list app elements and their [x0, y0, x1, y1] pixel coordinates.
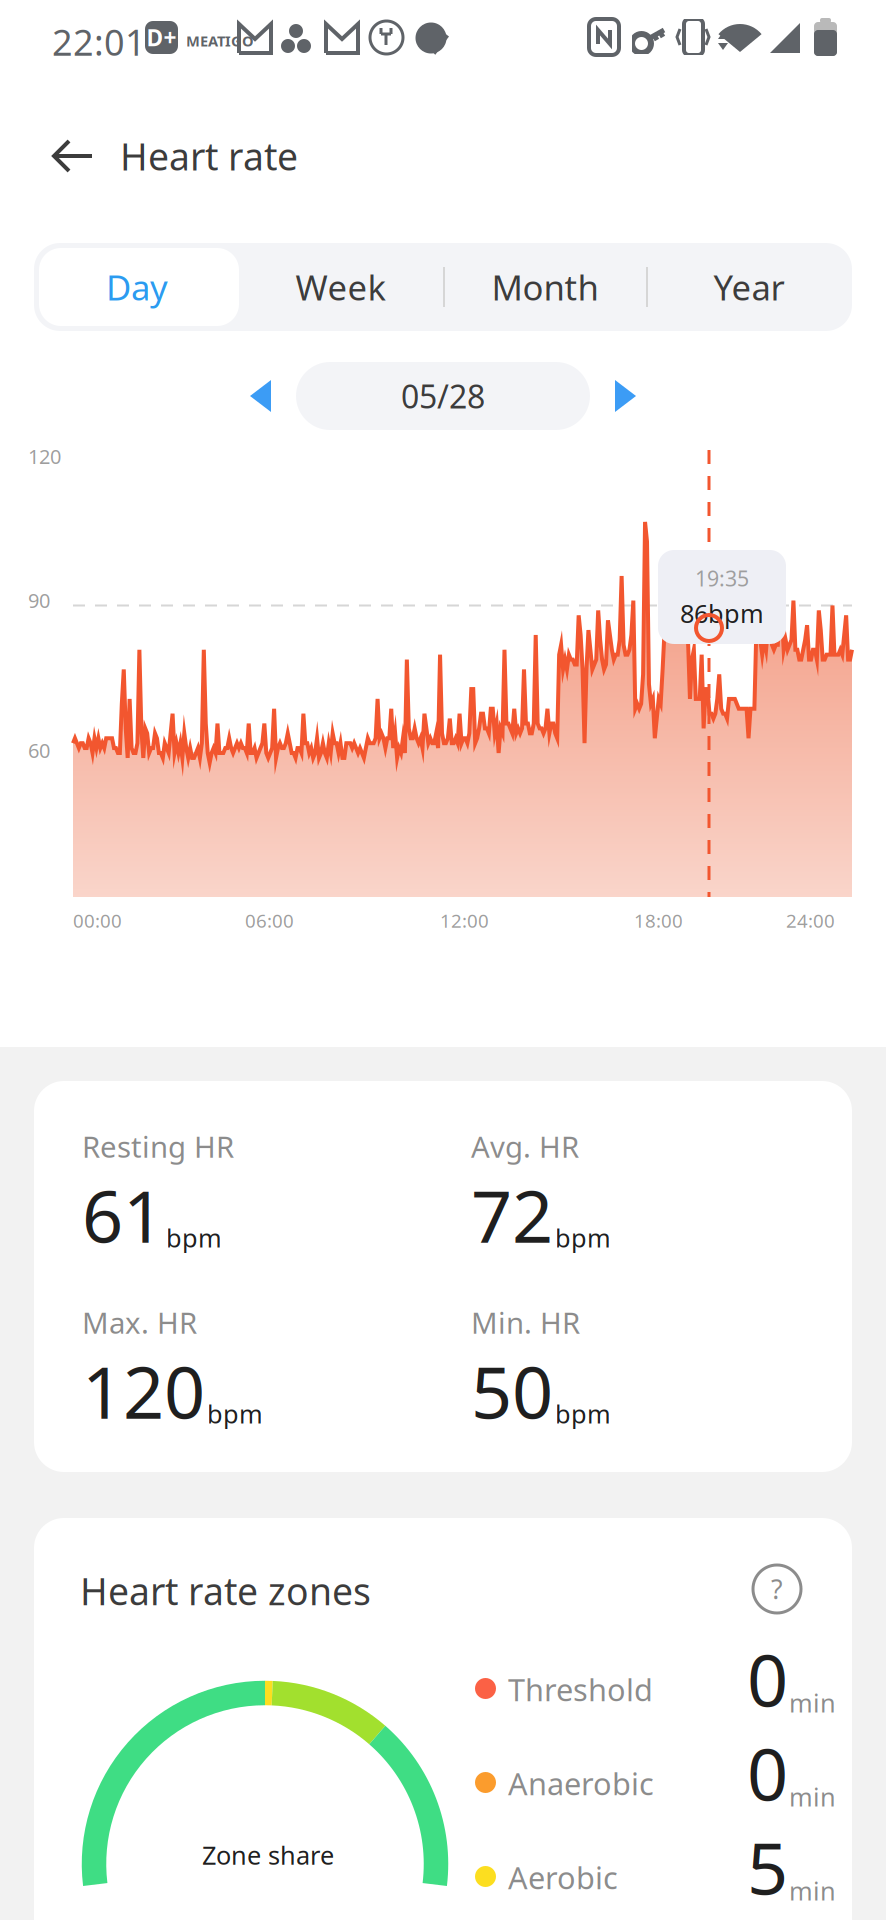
staticText: Heart rate: [120, 131, 298, 181]
staticText: 90: [28, 587, 50, 614]
staticText: Resting HR: [82, 1127, 234, 1166]
staticText: 72: [471, 1167, 553, 1263]
staticText: 00:00: [73, 908, 122, 933]
button[interactable]: Week: [239, 243, 443, 331]
staticText: Threshold: [508, 1669, 653, 1710]
button[interactable]: Year: [647, 243, 851, 331]
staticText: Min. HR: [471, 1303, 580, 1342]
button[interactable]: 05/28: [296, 362, 590, 430]
button[interactable]: Next day: [590, 362, 648, 430]
staticText: 61: [82, 1167, 164, 1263]
staticText: 86bpm: [680, 596, 764, 630]
staticText: 05/28: [401, 375, 485, 417]
staticText: Week: [295, 264, 386, 310]
staticText: bpm: [555, 1221, 611, 1255]
staticText: MEATIGO: [186, 31, 254, 50]
staticText: min: [789, 1686, 836, 1720]
staticText: Month: [491, 264, 598, 310]
staticText: bpm: [207, 1397, 263, 1431]
button[interactable]: Help: [750, 1562, 804, 1616]
staticText: 5: [747, 1819, 788, 1915]
staticText: ?: [771, 1571, 783, 1607]
staticText: Day: [106, 264, 168, 310]
staticText: Anaerobic: [508, 1763, 654, 1804]
button[interactable]: Month: [443, 243, 647, 331]
staticText: bpm: [555, 1397, 611, 1431]
staticText: 22:01: [52, 18, 146, 66]
staticText: 50: [471, 1343, 553, 1439]
staticText: min: [789, 1780, 836, 1814]
staticText: 0: [747, 1631, 788, 1727]
button[interactable]: Day: [35, 243, 239, 331]
staticText: Zone share: [202, 1838, 334, 1872]
staticText: 18:00: [634, 908, 683, 933]
staticText: 24:00: [786, 908, 835, 933]
button[interactable]: Back: [40, 121, 106, 191]
staticText: Max. HR: [82, 1303, 197, 1342]
staticText: 120: [28, 443, 61, 470]
staticText: Heart rate zones: [80, 1566, 371, 1616]
staticText: 120: [82, 1343, 205, 1439]
staticText: 60: [28, 737, 50, 764]
staticText: D+: [146, 22, 176, 52]
staticText: Aerobic: [508, 1857, 618, 1898]
staticText: Year: [713, 264, 784, 310]
staticText: 19:35: [695, 564, 749, 592]
staticText: min: [789, 1874, 836, 1908]
staticText: bpm: [166, 1221, 222, 1255]
button[interactable]: Previous day: [238, 362, 296, 430]
staticText: 0: [747, 1725, 788, 1821]
staticText: 06:00: [245, 908, 294, 933]
staticText: Avg. HR: [471, 1127, 579, 1166]
staticText: 12:00: [440, 908, 489, 933]
